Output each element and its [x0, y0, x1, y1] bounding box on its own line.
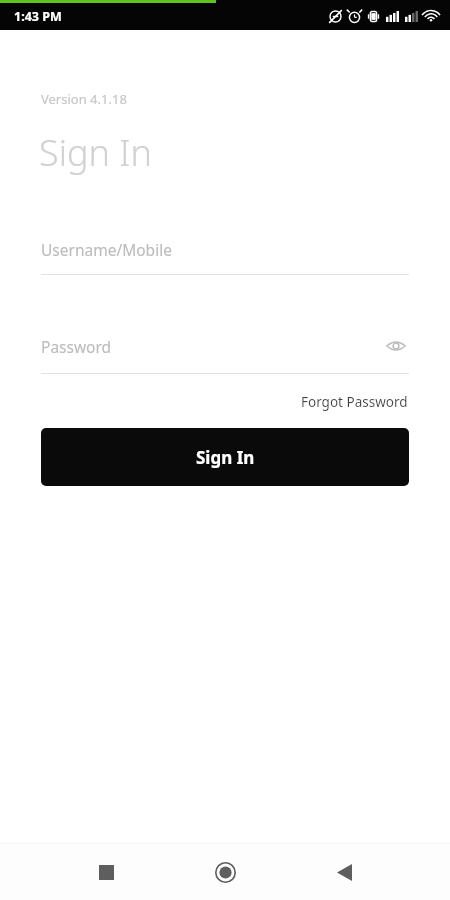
- staticText: Sign In: [39, 128, 152, 177]
- button[interactable]: Recent apps: [82, 848, 130, 896]
- button[interactable]: Sign In: [41, 428, 409, 486]
- staticText: Username/Mobile: [41, 239, 409, 260]
- button[interactable]: Show password: [383, 333, 409, 359]
- staticText: Forgot Password: [301, 393, 408, 411]
- staticText: Sign In: [196, 446, 255, 469]
- staticText: Version 4.1.18: [41, 90, 127, 108]
- button[interactable]: Forgot Password: [299, 389, 410, 415]
- staticText: 1:43 PM: [14, 8, 62, 25]
- button[interactable]: Home: [201, 848, 249, 896]
- staticText: Password: [41, 336, 383, 357]
- button[interactable]: Back: [320, 848, 368, 896]
